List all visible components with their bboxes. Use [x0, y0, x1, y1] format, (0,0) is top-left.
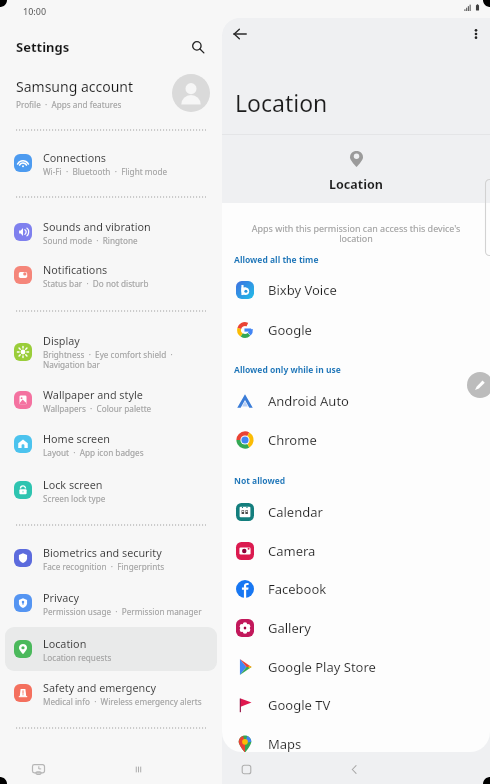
staticText: Profile · Apps and features [16, 99, 122, 110]
button[interactable]: Calendar [222, 498, 490, 526]
button[interactable]: Facebook [222, 575, 490, 603]
button[interactable]: Google [222, 316, 490, 344]
staticText: Display [43, 333, 80, 348]
button[interactable]: Notifications [5, 253, 217, 297]
button[interactable]: Location [5, 627, 217, 671]
staticText: Permission usage · Permission manager [43, 606, 202, 617]
staticText: Location [235, 87, 328, 118]
button[interactable]: Edit [467, 372, 490, 398]
staticText: Allowed all the time [234, 254, 319, 266]
button[interactable]: Wallpaper and style [5, 378, 217, 422]
staticText: Camera [268, 542, 316, 560]
staticText: Privacy [43, 590, 80, 605]
staticText: Lock screen [43, 477, 103, 492]
staticText: Wallpaper and style [43, 387, 143, 402]
staticText: Location [329, 176, 383, 193]
staticText: Biometrics and security [43, 545, 162, 560]
staticText: Maps [268, 735, 302, 752]
staticText: Face recognition · Fingerprints [43, 561, 165, 572]
staticText: Allowed only while in use [234, 364, 341, 376]
staticText: Status bar · Do not disturb [43, 278, 149, 289]
button[interactable]: Sounds and vibration [5, 210, 217, 254]
staticText: Chrome [268, 431, 317, 449]
button[interactable]: Connections [5, 141, 217, 185]
staticText: Location requests [43, 652, 112, 663]
button[interactable]: Home [232, 755, 260, 783]
button[interactable]: Lock screen [5, 468, 217, 512]
staticText: Android Auto [268, 392, 349, 410]
button[interactable]: Navigate up [228, 22, 252, 46]
staticText: Gallery [268, 619, 311, 637]
staticText: 10:00 [23, 5, 47, 17]
staticText: Safety and emergency [43, 680, 156, 695]
staticText: Brightness · Eye comfort shield · Naviga… [43, 349, 173, 371]
staticText: Bixby Voice [268, 281, 337, 299]
button[interactable]: Android Auto [222, 387, 490, 415]
staticText: Apps with this permission can access thi… [230, 222, 482, 245]
button[interactable]: Google TV [222, 691, 490, 719]
staticText: Wi-Fi · Bluetooth · Flight mode [43, 166, 168, 177]
staticText: Not allowed [234, 475, 286, 487]
button[interactable]: Display [5, 327, 217, 377]
staticText: Calendar [268, 503, 323, 521]
button[interactable]: Search [186, 35, 210, 59]
button[interactable]: Biometrics and security [5, 536, 217, 580]
button[interactable]: Chrome [222, 426, 490, 454]
button[interactable]: Recent apps [24, 755, 52, 783]
button[interactable]: Back [340, 755, 368, 783]
staticText: Screen lock type [43, 493, 106, 504]
staticText: Sounds and vibration [43, 219, 151, 234]
staticText: Sound mode · Ringtone [43, 235, 138, 246]
button[interactable]: Bixby Voice [222, 276, 490, 304]
staticText: Connections [43, 150, 107, 165]
staticText: Google [268, 321, 312, 339]
staticText: Google TV [268, 696, 331, 714]
staticText: Facebook [268, 580, 327, 598]
button[interactable]: More options [464, 22, 488, 46]
button[interactable]: Google Play Store [222, 653, 490, 681]
button[interactable]: Maps [222, 730, 490, 752]
button[interactable]: Camera [222, 537, 490, 565]
staticText: Medical info · Wireless emergency alerts [43, 696, 202, 707]
button[interactable]: Samsung account [0, 72, 222, 114]
staticText: Google Play Store [268, 658, 376, 676]
button[interactable]: Home screen [5, 422, 217, 466]
staticText: Layout · App icon badges [43, 447, 144, 458]
button[interactable]: Menu [124, 755, 152, 783]
staticText: Settings [16, 38, 70, 56]
staticText: Samsung account [16, 77, 134, 96]
button[interactable]: Privacy [5, 581, 217, 625]
staticText: Location [43, 636, 87, 651]
button[interactable]: Safety and emergency [5, 671, 217, 715]
staticText: Wallpapers · Colour palette [43, 403, 152, 414]
staticText: Notifications [43, 262, 108, 277]
button[interactable]: Gallery [222, 614, 490, 642]
staticText: Home screen [43, 431, 110, 446]
